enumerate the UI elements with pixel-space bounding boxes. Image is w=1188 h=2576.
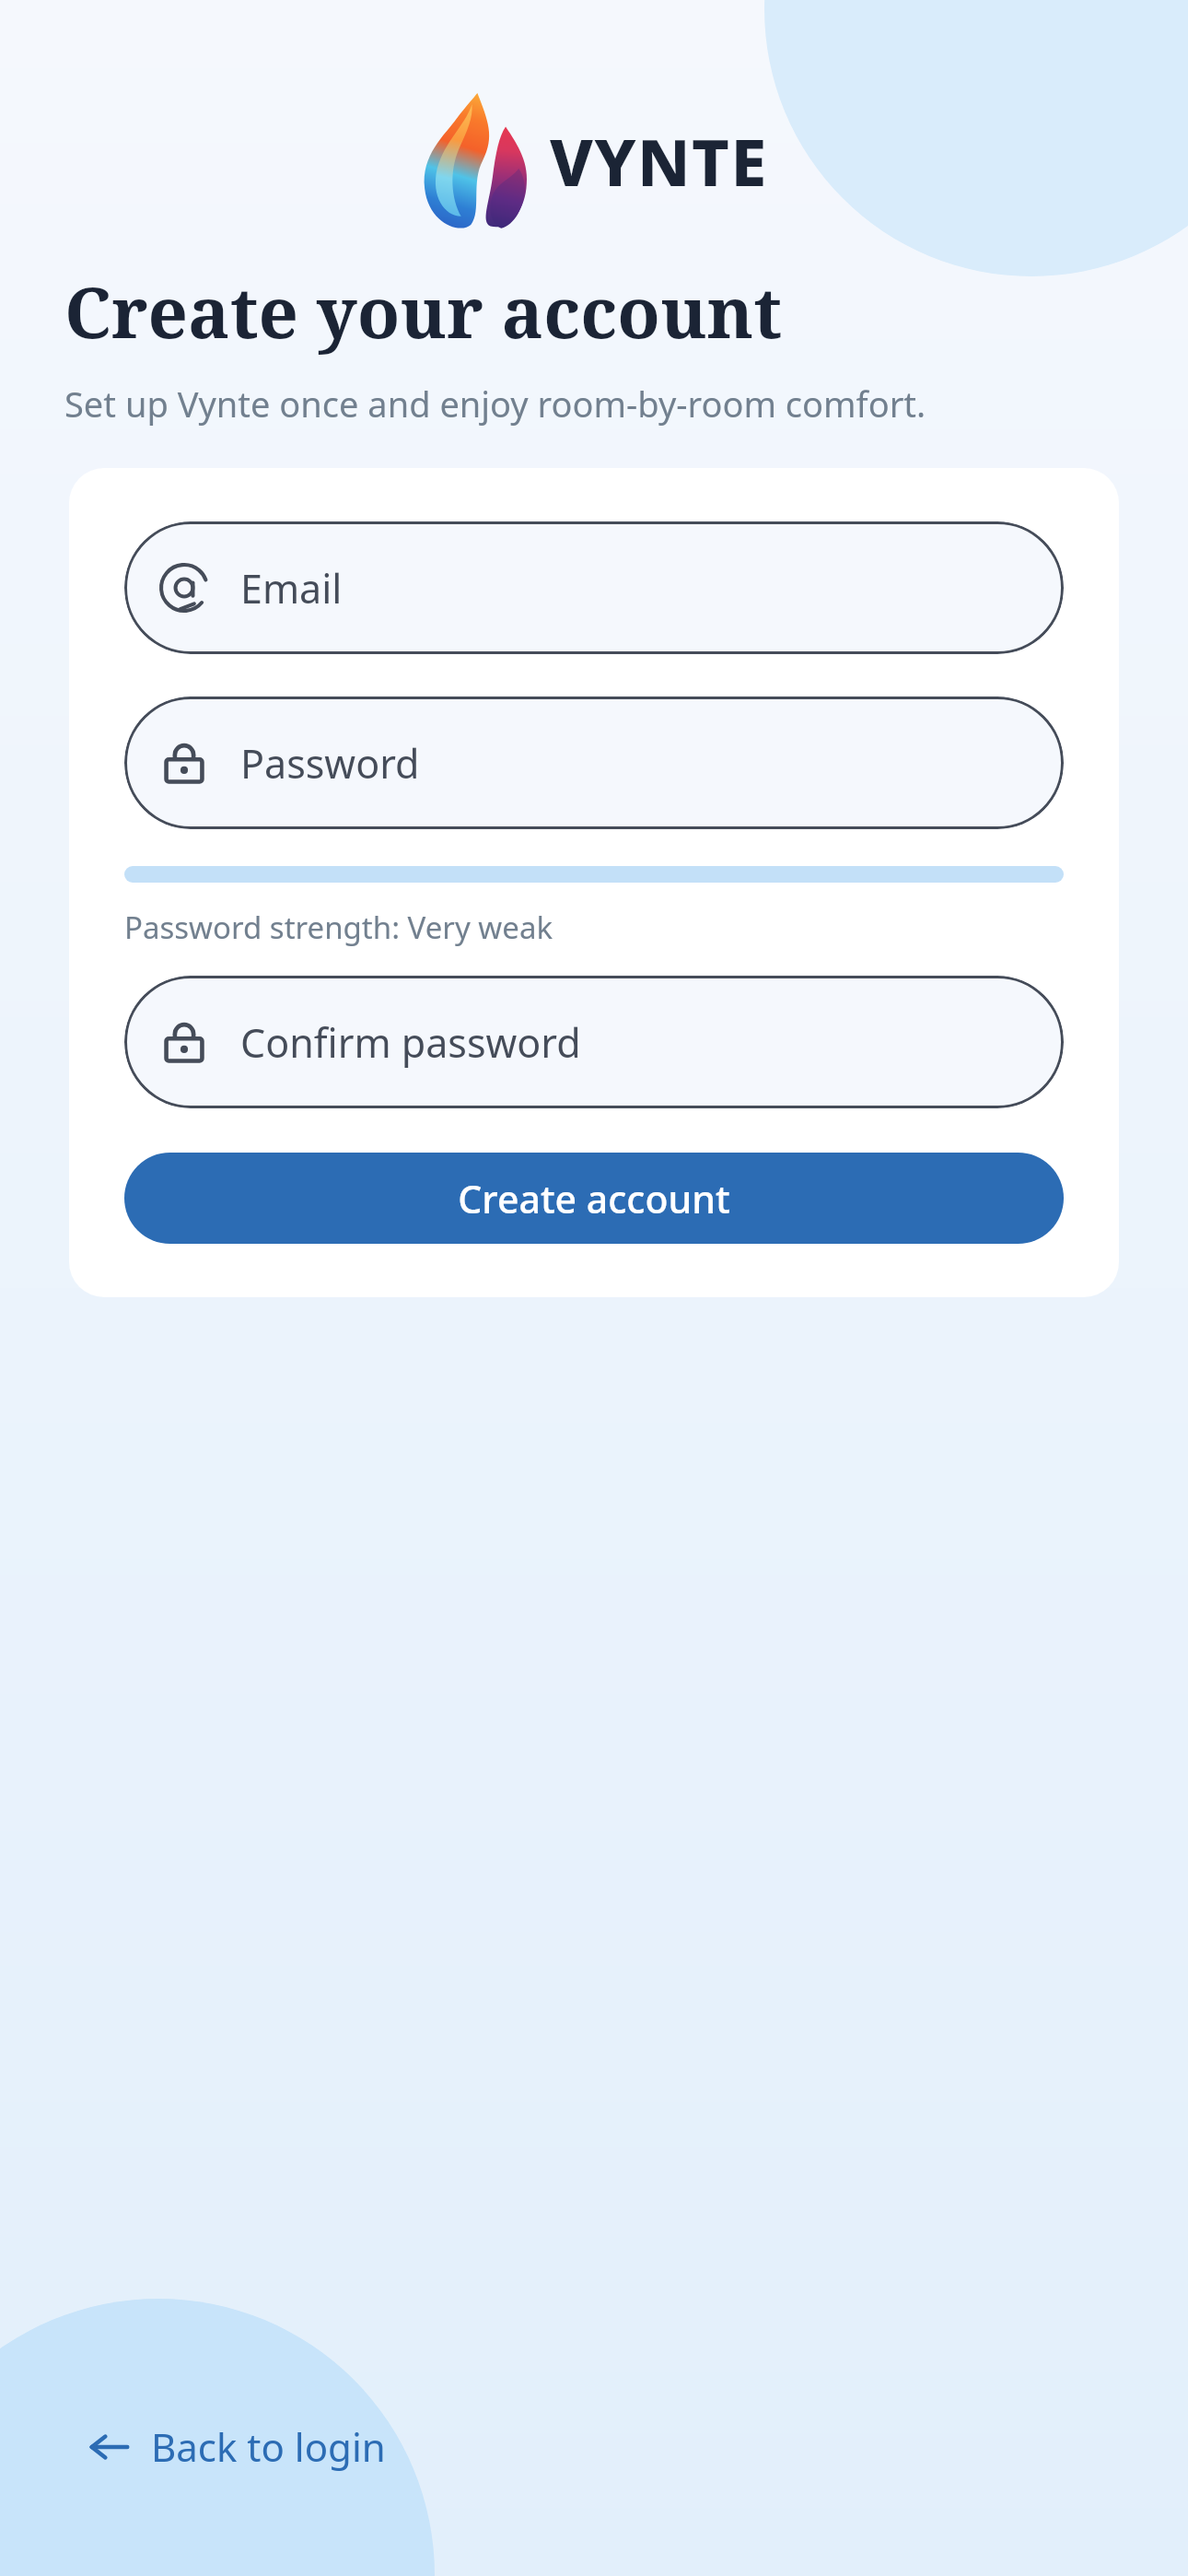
button[interactable]: Confirm password xyxy=(124,976,1064,1108)
staticText: Email xyxy=(240,561,343,615)
staticText: Back to login xyxy=(151,2420,386,2473)
staticText: Password strength: Very weak xyxy=(124,907,553,948)
staticText: Password xyxy=(240,736,420,790)
button[interactable]: Create account xyxy=(124,1153,1064,1244)
staticText: Create account xyxy=(458,1173,730,1224)
button[interactable]: Password xyxy=(124,697,1064,829)
staticText: Create your account xyxy=(64,263,783,359)
staticText: VYNTE xyxy=(550,117,768,205)
button[interactable]: Back xyxy=(81,2409,393,2484)
other: Back xyxy=(88,2426,131,2468)
staticText: Confirm password xyxy=(240,1015,581,1070)
staticText: Set up Vynte once and enjoy room-by-room… xyxy=(64,380,926,427)
button[interactable]: Email xyxy=(124,521,1064,654)
